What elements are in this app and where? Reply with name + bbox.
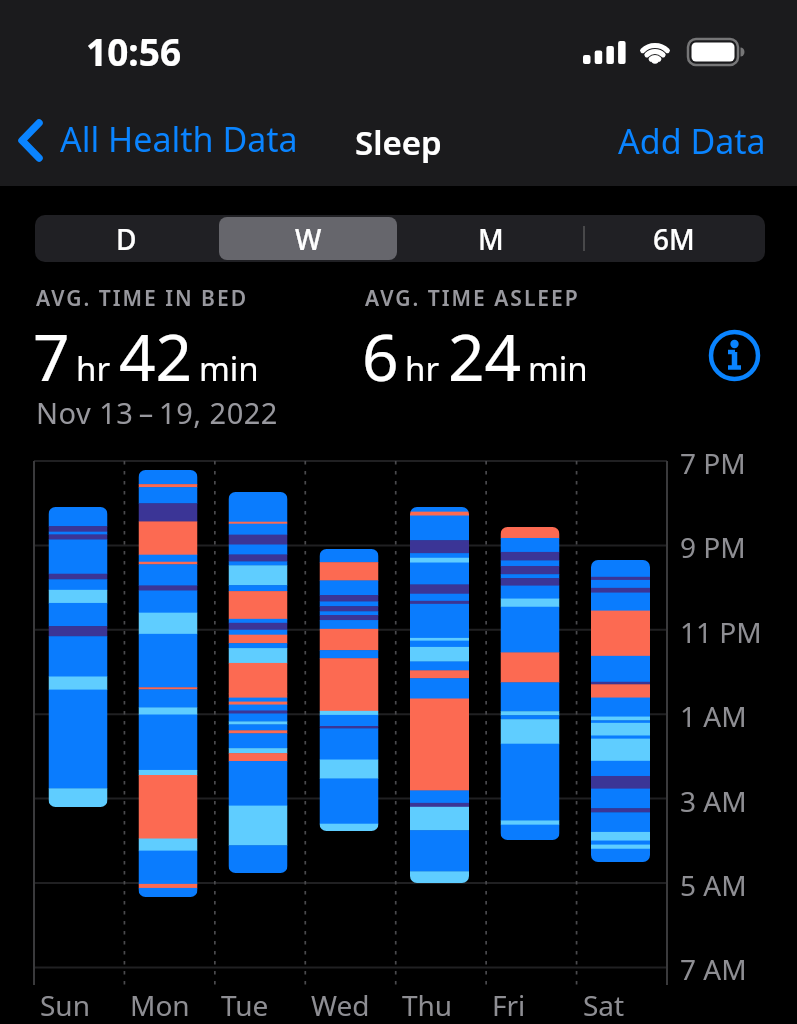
staticText: D [116,220,137,258]
button[interactable]: All Health Data [16,112,300,164]
staticText: 7 [33,313,70,400]
staticText: Mon [130,986,190,1024]
staticText: 42 [119,313,193,400]
staticText: Sleep [355,120,442,165]
staticText: min [528,346,588,391]
staticText: Wed [311,986,370,1024]
staticText: 7 AM [680,950,747,988]
staticText: min [199,346,259,391]
staticText: Fri [492,986,526,1024]
button[interactable]: M [401,217,580,260]
staticText: 10:56 [86,26,182,76]
button[interactable]: Add Data [616,116,768,166]
button[interactable]: D [37,217,215,260]
staticText: 6 [362,313,399,400]
staticText: 5 AM [680,866,747,904]
button[interactable]: W [219,217,397,260]
staticText: 6M [653,220,695,258]
staticText: AVG. TIME IN BED [36,284,249,313]
button[interactable]: 6M [584,217,763,260]
staticText: 24 [448,313,522,400]
staticText: 11 PM [680,613,762,651]
staticText: 7 PM [680,444,746,482]
staticText: 3 AM [680,782,747,820]
staticText: Tue [221,986,269,1024]
staticText: All Health Data [60,116,298,162]
staticText: hr [76,346,111,391]
staticText: hr [405,346,440,391]
staticText: W [295,220,322,258]
staticText: 1 AM [680,697,747,735]
staticText: 9 PM [680,528,746,566]
staticText: Nov 13 – 19, 2022 [36,393,278,432]
staticText: Sun [40,986,90,1024]
staticText: Thu [402,986,453,1024]
staticText: M [478,220,504,258]
staticText: Add Data [618,118,766,164]
staticText: AVG. TIME ASLEEP [365,284,580,313]
staticText: Sat [583,986,625,1024]
button[interactable] [708,329,761,382]
